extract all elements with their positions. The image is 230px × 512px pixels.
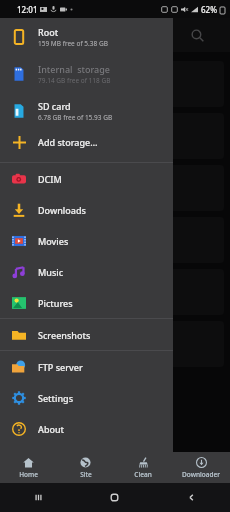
staticText: FTP server [38, 361, 83, 373]
staticText: 6.78 GB free of 15.93 GB [38, 113, 113, 122]
staticText: Movies [38, 235, 69, 247]
staticText: 100% [20, 77, 46, 91]
staticText: Download [20, 233, 68, 247]
button[interactable]: DCIM [0, 163, 173, 194]
button[interactable]: FTP server [0, 351, 173, 382]
staticText: Downloads [38, 204, 86, 216]
button[interactable]: Add storage… [0, 129, 173, 155]
staticText: Settings [38, 392, 74, 404]
staticText: Music [38, 266, 64, 278]
button[interactable]: Clean [114, 452, 172, 483]
staticText: Downloader [182, 470, 220, 479]
staticText: Clean [134, 470, 152, 479]
staticText: Document [20, 181, 70, 195]
staticText: Root [38, 26, 59, 38]
button[interactable]: Recents [0, 483, 76, 512]
button[interactable]: Home [76, 483, 153, 512]
staticText: Screenshots [38, 329, 91, 341]
staticText: 79.14 GB free of 118 GB [38, 76, 111, 85]
staticText: Site [80, 470, 92, 479]
button[interactable]: Home [0, 452, 57, 483]
button[interactable]: Settings [0, 382, 173, 413]
button[interactable]: Site [57, 452, 114, 483]
button[interactable]: Downloads [0, 194, 173, 225]
button[interactable]: About [0, 413, 173, 444]
staticText: 44% [20, 129, 40, 143]
button[interactable]: SD card [0, 92, 173, 129]
staticText: 12:01 [17, 4, 38, 15]
staticText: Add storage… [38, 136, 98, 148]
button[interactable]: Pictures [0, 287, 173, 318]
button[interactable]: Screenshots [0, 319, 173, 350]
staticText: SD card [38, 100, 71, 112]
button[interactable]: Movies [0, 225, 173, 256]
staticText: Pictures [38, 297, 73, 309]
other: Search [191, 29, 204, 42]
button[interactable]: Root [0, 18, 173, 55]
button[interactable]: Back [153, 483, 230, 512]
staticText: DCIM [38, 173, 62, 185]
staticText: 62% [201, 4, 217, 15]
staticText: 159 MB free of 5.38 GB [38, 39, 108, 48]
button[interactable]: Music [0, 256, 173, 287]
staticText: Internal storage [38, 63, 110, 75]
button[interactable]: Downloader [172, 452, 230, 483]
staticText: About [38, 423, 65, 435]
staticText: Home [19, 470, 38, 479]
button[interactable]: Internal storage [0, 55, 173, 92]
